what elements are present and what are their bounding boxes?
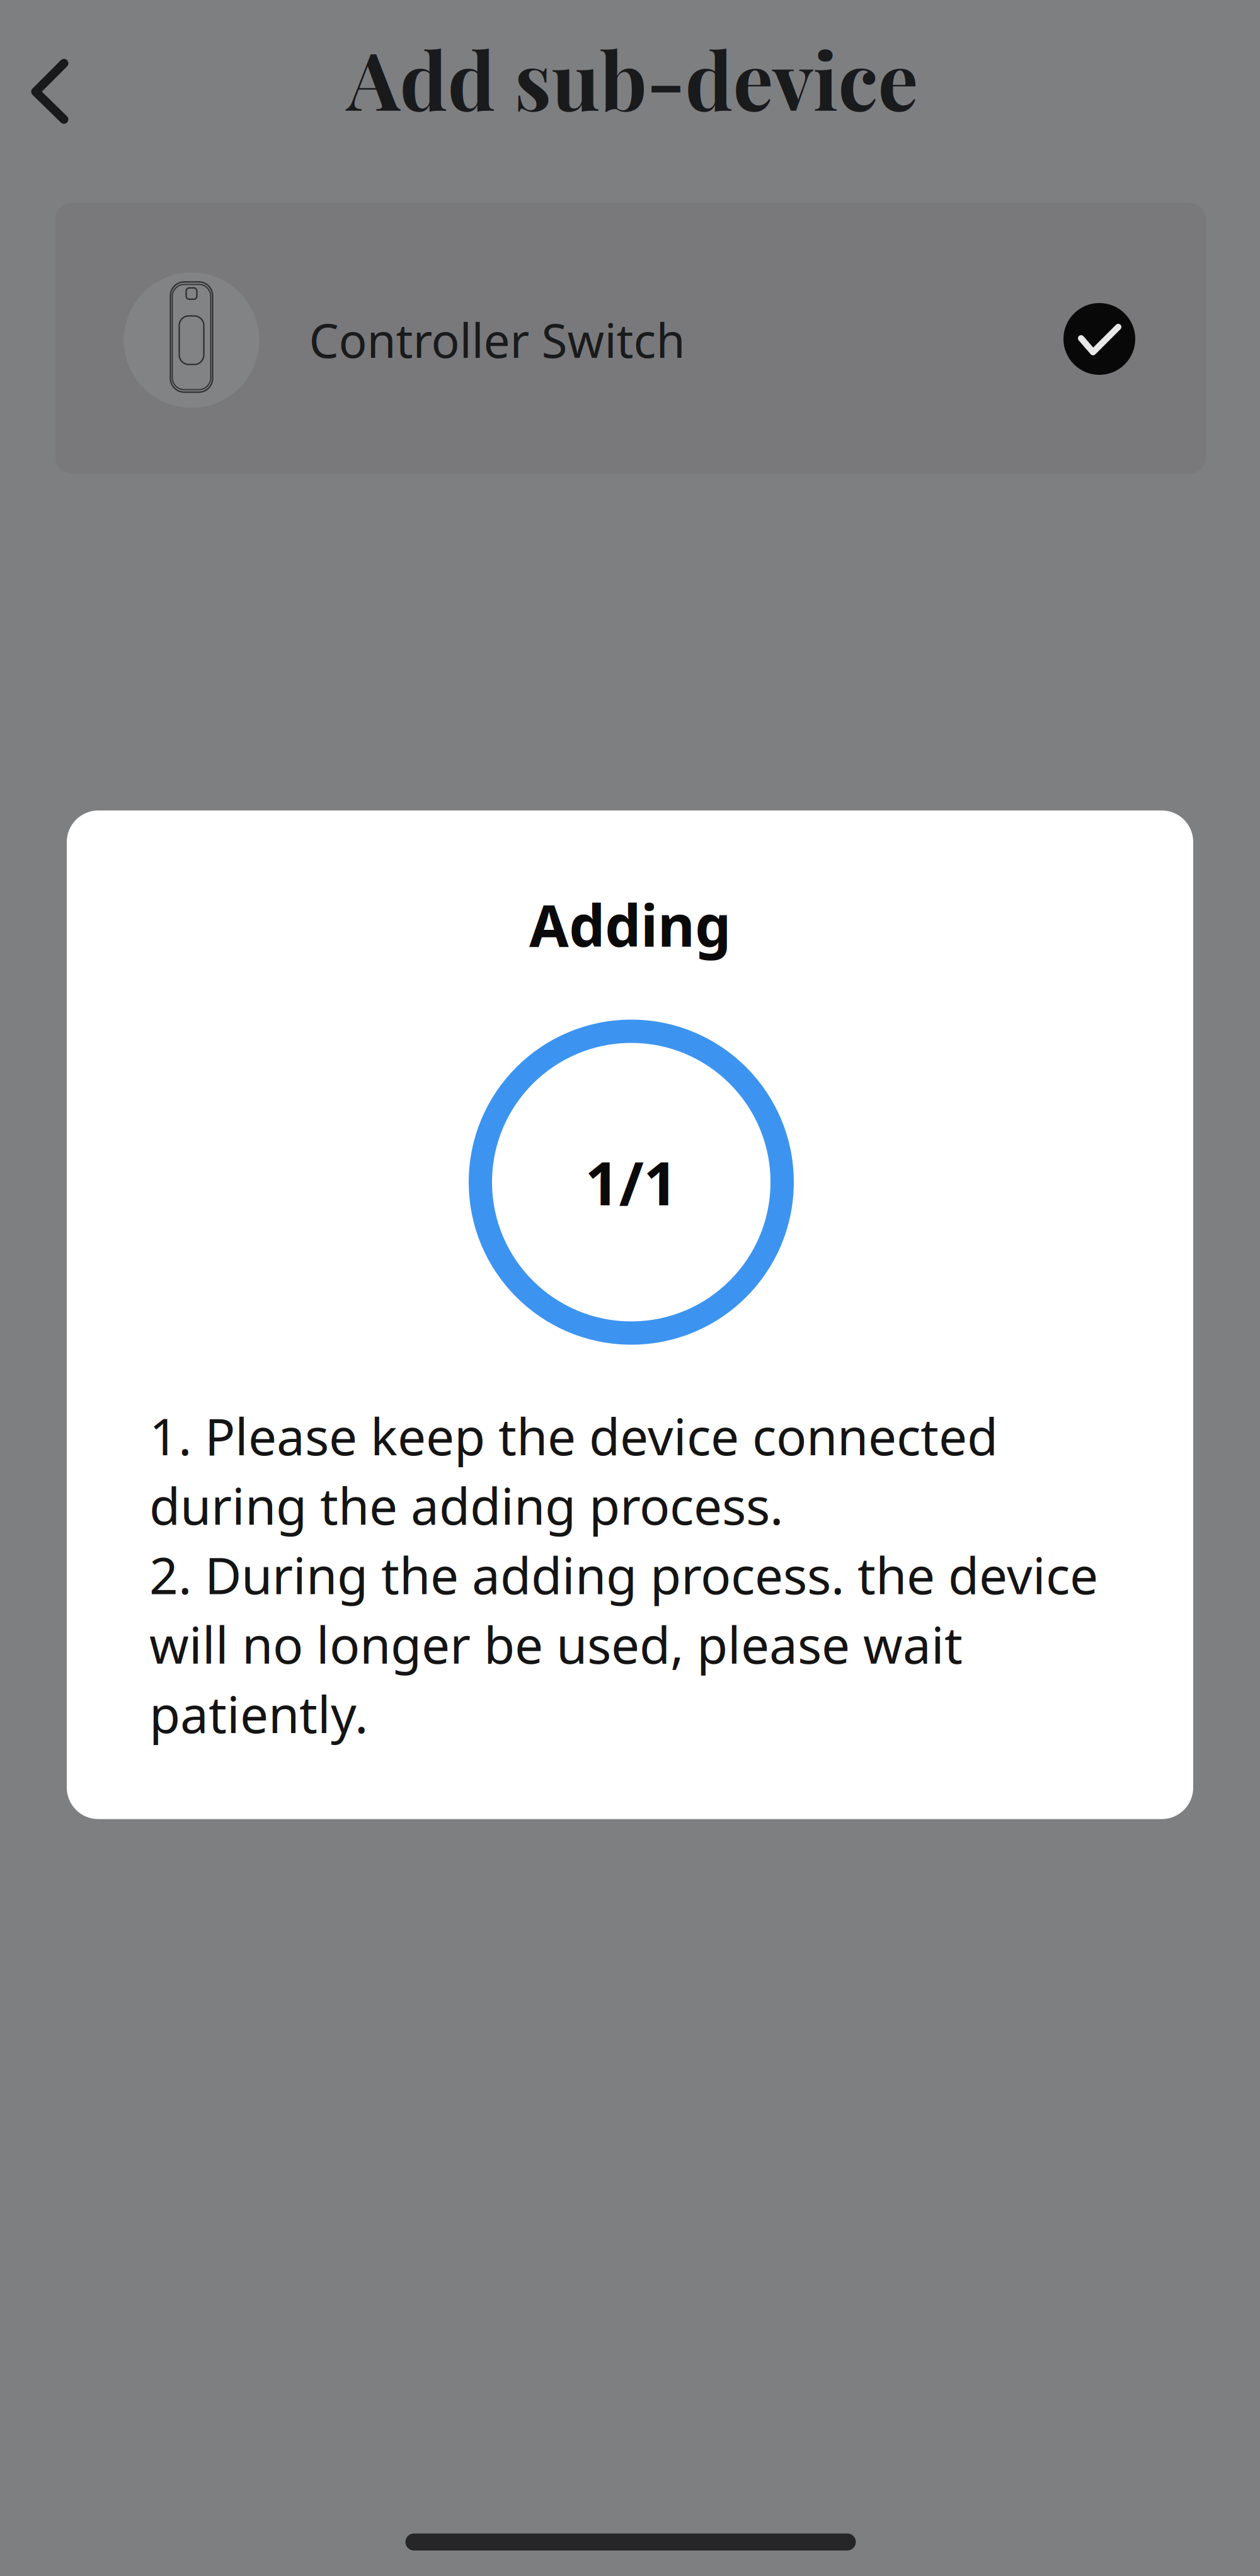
- staticText: Adding: [529, 887, 731, 962]
- staticText: Add sub-device: [347, 24, 918, 131]
- staticText: 1/1: [585, 1143, 678, 1222]
- button[interactable]: Controller Switch: [55, 203, 1206, 474]
- staticText: Controller Switch: [309, 308, 685, 371]
- button[interactable]: Back: [0, 38, 103, 145]
- staticText: 1. Please keep the device connected duri…: [149, 1402, 1098, 1747]
